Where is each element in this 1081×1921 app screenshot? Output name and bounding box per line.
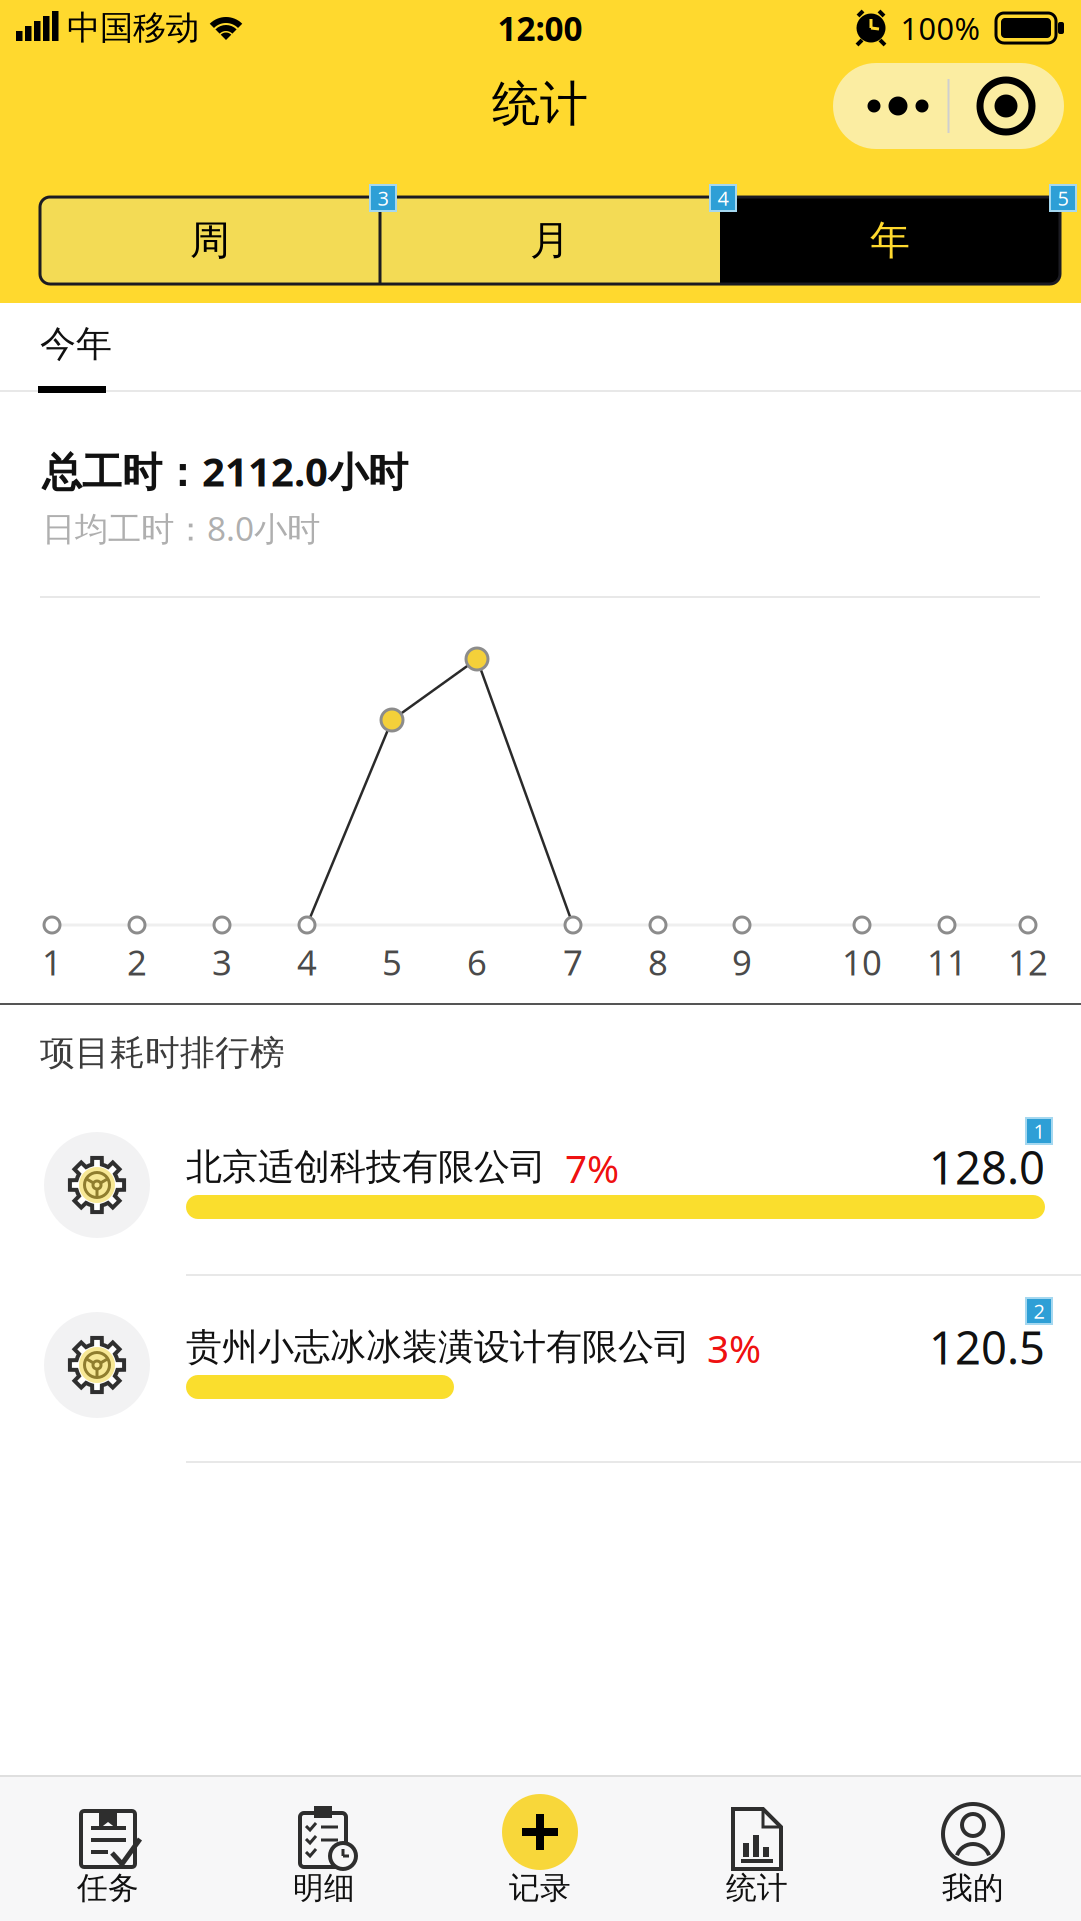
staticText: 中国移动 [67, 7, 199, 48]
staticText: 3 [212, 939, 232, 985]
button[interactable]: 年 [720, 197, 1060, 284]
staticText: 7 [563, 939, 583, 985]
button[interactable]: 今年 [6, 304, 146, 384]
staticText: 1 [42, 939, 62, 985]
staticText: 统计 [726, 1869, 788, 1907]
staticText: 120.5 [929, 1317, 1045, 1377]
staticText: 8 [648, 939, 668, 985]
button[interactable]: 任务 [0, 1777, 216, 1921]
staticText: 12 [1008, 939, 1048, 985]
staticText: 2 [1033, 1298, 1044, 1324]
button[interactable]: 统计 [649, 1777, 865, 1921]
button[interactable]: 我的 [865, 1777, 1081, 1921]
staticText: 10 [842, 939, 882, 985]
staticText: 5 [382, 939, 402, 985]
button[interactable] [949, 63, 1064, 149]
staticText: 记录 [509, 1869, 571, 1907]
button[interactable]: 北京适创科技有限公司 [0, 1095, 1081, 1275]
staticText: 周 [190, 216, 230, 265]
button[interactable]: 记录 [432, 1777, 648, 1921]
staticText: 4 [717, 185, 728, 211]
staticText: 统计 [492, 74, 588, 133]
staticText: 2 [127, 939, 147, 985]
button[interactable]: 周 [40, 197, 380, 284]
staticText: 1 [1033, 1118, 1044, 1144]
staticText: 我的 [942, 1869, 1004, 1907]
staticText: 明细 [293, 1869, 355, 1907]
staticText: 北京适创科技有限公司 [186, 1145, 546, 1189]
staticText: 贵州小志冰冰装潢设计有限公司 [186, 1325, 690, 1369]
staticText: 3% [707, 1322, 761, 1374]
staticText: 100% [900, 8, 979, 48]
staticText: 总工时：2112.0小时 [42, 444, 408, 497]
staticText: 今年 [40, 322, 112, 366]
staticText: 11 [927, 939, 967, 985]
staticText: 7% [565, 1142, 619, 1194]
staticText: 4 [297, 939, 317, 985]
staticText: 3 [377, 185, 388, 211]
staticText: 5 [1057, 185, 1068, 211]
button[interactable] [833, 63, 949, 149]
staticText: 月 [530, 216, 570, 265]
button[interactable]: 月 [380, 197, 720, 284]
staticText: 9 [732, 939, 752, 985]
staticText: 项目耗时排行榜 [40, 1032, 285, 1074]
staticText: 任务 [77, 1869, 139, 1907]
staticText: 12:00 [497, 6, 582, 50]
button[interactable]: 明细 [216, 1777, 432, 1921]
staticText: 年 [870, 216, 910, 265]
staticText: 日均工时：8.0小时 [42, 506, 320, 550]
staticText: 6 [467, 939, 487, 985]
staticText: 128.0 [929, 1137, 1045, 1197]
button[interactable]: 贵州小志冰冰装潢设计有限公司 [0, 1275, 1081, 1455]
